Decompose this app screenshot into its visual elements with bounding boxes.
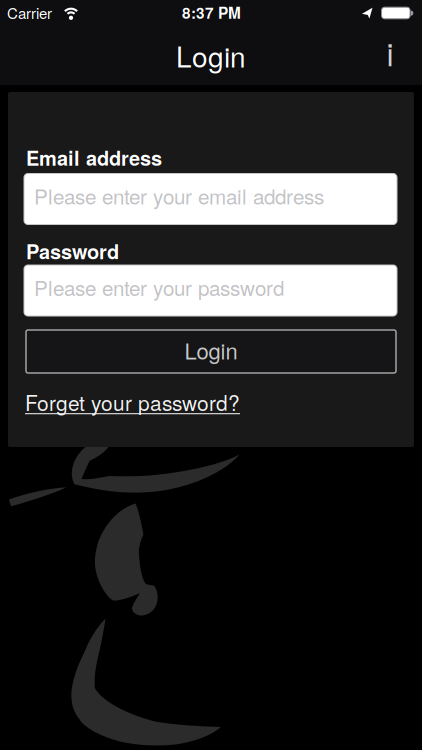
staticText: i [386, 30, 393, 75]
button[interactable]: Forget your password? [25, 387, 397, 417]
staticText: Please enter your email address [34, 181, 324, 210]
button[interactable]: i [375, 34, 405, 70]
staticText: Email address [26, 143, 162, 172]
staticText: Login [184, 334, 237, 366]
staticText: Forget your password? [25, 387, 240, 417]
staticText: Please enter your password [34, 272, 284, 302]
staticText: 8:37 PM [182, 1, 241, 23]
staticText: Login [176, 35, 246, 76]
staticText: Carrier [7, 2, 52, 23]
button[interactable]: Please enter your password [24, 265, 397, 316]
button[interactable]: Please enter your email address [24, 173, 397, 224]
button[interactable]: Login [26, 330, 396, 373]
staticText: Password [26, 237, 119, 265]
